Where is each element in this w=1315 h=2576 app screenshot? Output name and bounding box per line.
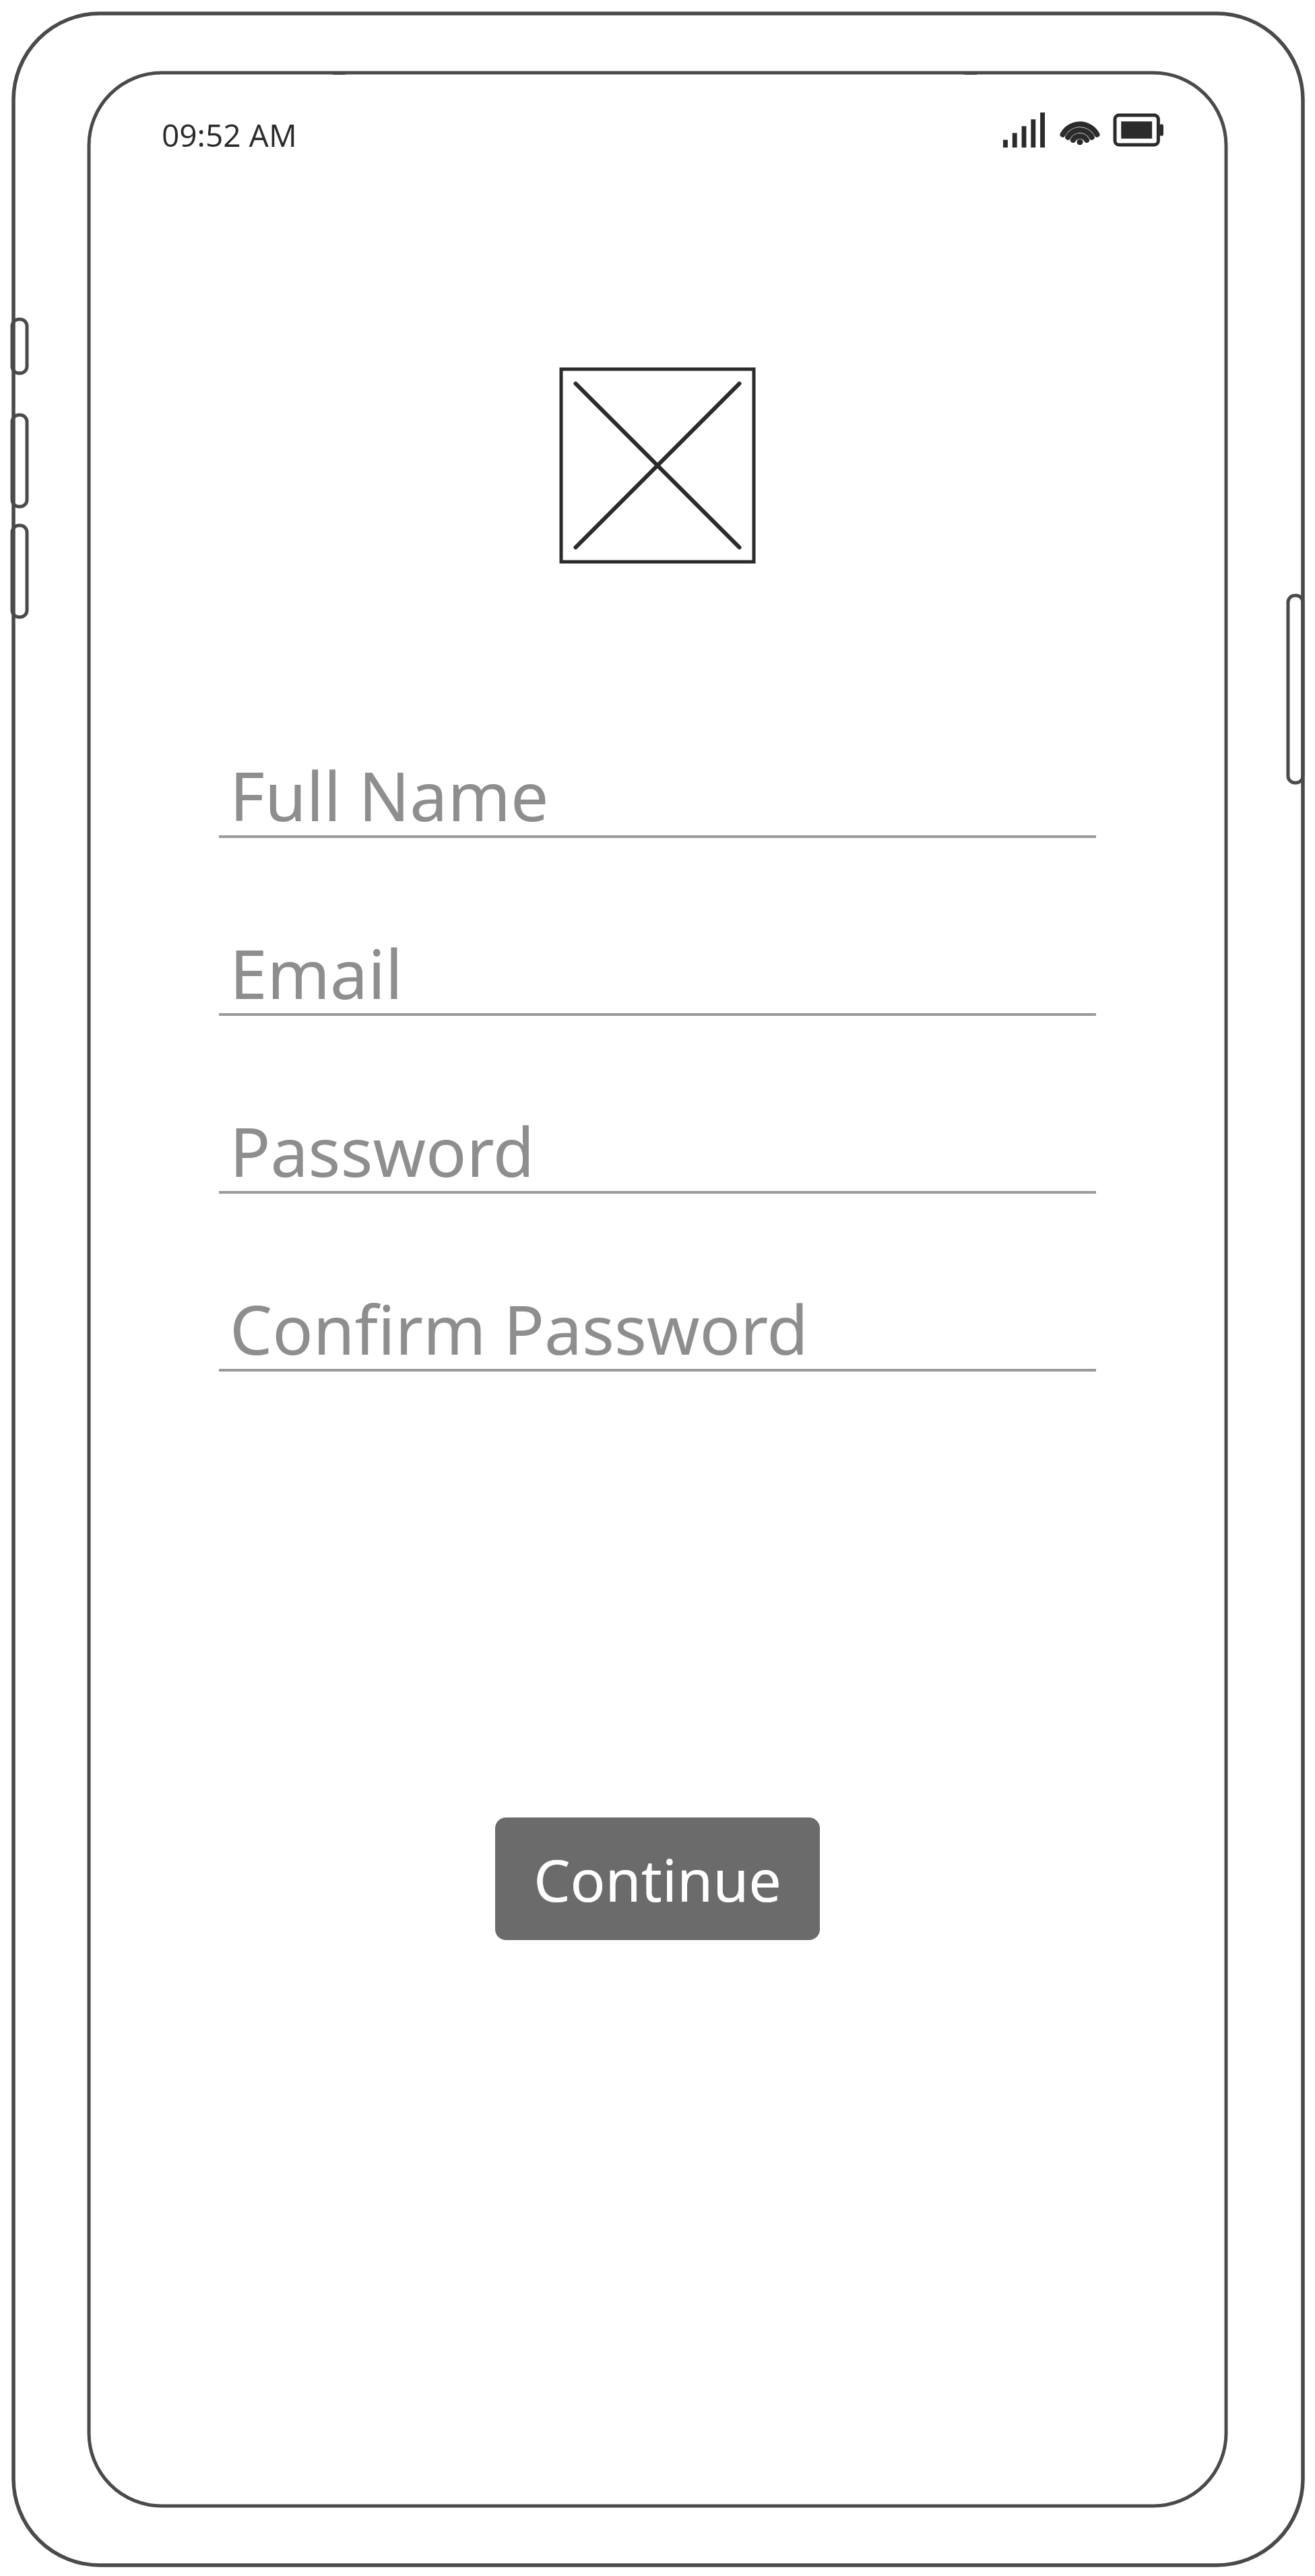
other: Cellular signal <box>1003 112 1045 148</box>
button[interactable]: Full Name <box>219 749 1096 838</box>
other: App logo placeholder <box>561 369 754 562</box>
staticText: Continue <box>534 1840 781 1919</box>
staticText: Confirm Password <box>230 1283 808 1369</box>
staticText: Email <box>230 927 403 1013</box>
button[interactable]: Password <box>219 1105 1096 1194</box>
button[interactable]: Confirm Password <box>219 1283 1096 1372</box>
other: Battery <box>1115 115 1165 145</box>
staticText: Password <box>230 1105 535 1191</box>
button[interactable]: Continue <box>495 1817 820 1940</box>
other: Wi-Fi <box>1060 114 1100 146</box>
staticText: 09:52 AM <box>162 114 297 156</box>
button[interactable]: Email <box>219 927 1096 1016</box>
staticText: Full Name <box>230 749 549 835</box>
